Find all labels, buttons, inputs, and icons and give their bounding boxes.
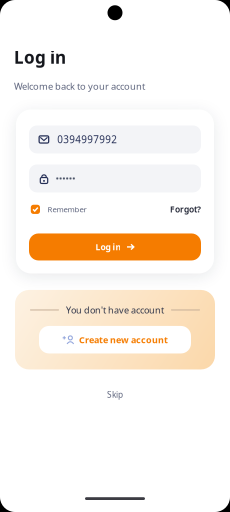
button[interactable]: Create new account <box>39 326 191 353</box>
staticText: Log in <box>14 45 66 69</box>
staticText: Create new account <box>79 334 168 346</box>
staticText: Welcome back to your account <box>14 80 145 92</box>
staticText: 0394997992 <box>57 133 117 146</box>
staticText: You don't have account <box>66 304 164 316</box>
staticText: Skip <box>107 389 123 400</box>
staticText: Remember <box>47 204 86 215</box>
staticText: Forgot? <box>170 204 201 215</box>
button[interactable]: Remember <box>31 204 86 215</box>
button[interactable]: Skip <box>95 384 135 404</box>
button[interactable]: Log in <box>29 233 201 260</box>
staticText: Log in <box>95 241 121 253</box>
button[interactable]: Forgot? <box>170 204 201 215</box>
